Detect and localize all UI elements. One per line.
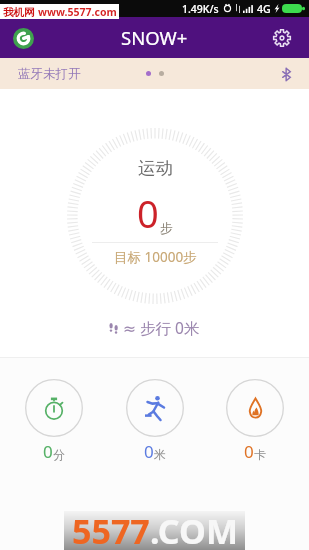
staticText: 4G bbox=[257, 2, 271, 16]
button[interactable]: Bluetooth bbox=[275, 63, 297, 85]
staticText: ≈ 步行 0米 bbox=[123, 317, 200, 338]
staticText: 分 bbox=[53, 447, 65, 462]
staticText: 卡 bbox=[254, 447, 266, 462]
staticText: 步 bbox=[160, 220, 173, 236]
staticText: 0 bbox=[43, 440, 53, 463]
staticText: 5577 bbox=[72, 508, 150, 547]
staticText: 0 bbox=[144, 440, 154, 463]
button[interactable]: 0 bbox=[209, 379, 301, 463]
staticText: 目标 10000步 bbox=[114, 248, 197, 266]
staticText: www.5577.com bbox=[38, 5, 117, 19]
button[interactable]: ≈ 步行 0米 bbox=[109, 317, 200, 338]
staticText: 蓝牙未打开 bbox=[18, 66, 81, 82]
staticText: SNOW+ bbox=[121, 25, 188, 50]
staticText: 0 bbox=[244, 440, 254, 463]
staticText: 运动 bbox=[138, 157, 173, 179]
button[interactable]: App logo bbox=[8, 23, 38, 53]
button[interactable]: Settings bbox=[266, 22, 298, 54]
staticText: 米 bbox=[154, 447, 166, 462]
button[interactable]: 0 bbox=[8, 379, 100, 463]
staticText: 我机网 bbox=[3, 6, 35, 19]
staticText: 0 bbox=[137, 187, 159, 239]
staticText: .COM bbox=[150, 508, 238, 547]
button[interactable]: 0 bbox=[109, 379, 201, 463]
staticText: 1.49K/s bbox=[182, 2, 219, 16]
